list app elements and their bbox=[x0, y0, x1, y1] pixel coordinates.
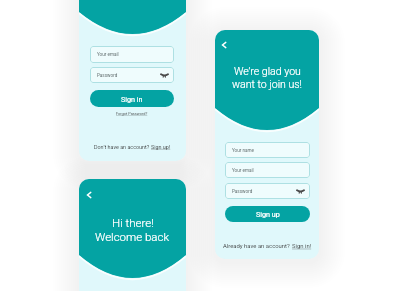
staticText: Your name bbox=[232, 148, 254, 153]
button[interactable]: Password bbox=[225, 183, 310, 199]
staticText: want to join us! bbox=[232, 78, 303, 90]
button[interactable]: Back bbox=[218, 39, 230, 51]
button[interactable]: Back bbox=[83, 189, 95, 201]
staticText: Your email bbox=[232, 168, 254, 173]
staticText: Password bbox=[97, 73, 118, 78]
staticText: Hi there! bbox=[112, 216, 154, 229]
button[interactable]: Forgot Password? bbox=[116, 111, 148, 116]
staticText: Sign in bbox=[121, 95, 143, 103]
button[interactable]: Your email bbox=[90, 46, 174, 63]
button[interactable]: Sign in bbox=[90, 90, 174, 107]
staticText: We’re glad you bbox=[234, 65, 301, 77]
button[interactable]: Sign up! bbox=[151, 144, 171, 150]
staticText: Sign up bbox=[256, 210, 280, 218]
staticText: Password bbox=[232, 189, 253, 194]
button[interactable]: Your email bbox=[225, 162, 310, 178]
staticText: Your email bbox=[97, 52, 119, 57]
staticText: Don’t have an account? bbox=[94, 144, 151, 150]
button[interactable]: Password bbox=[90, 67, 174, 83]
staticText: Already have an account? bbox=[223, 243, 292, 250]
button[interactable]: Your name bbox=[225, 142, 310, 158]
button[interactable]: Sign up bbox=[225, 206, 310, 222]
button[interactable]: Sign in! bbox=[292, 243, 312, 250]
staticText: Welcome back bbox=[95, 230, 170, 243]
